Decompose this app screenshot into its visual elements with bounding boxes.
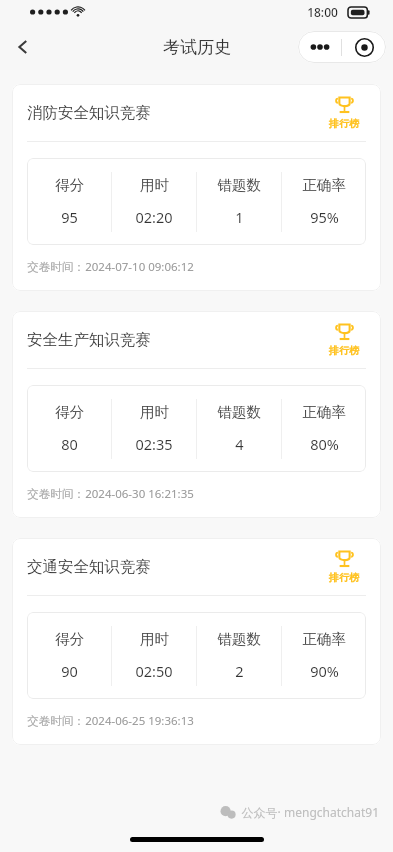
staticText: 2	[235, 661, 244, 681]
staticText: 95%	[310, 207, 339, 227]
staticText: 02:35	[135, 434, 173, 454]
staticText: 2024-07-10 09:06:12	[85, 259, 194, 275]
staticText: 02:50	[135, 661, 173, 681]
staticText: 4	[235, 434, 244, 454]
staticText: 排行榜	[329, 117, 359, 130]
staticText: 错题数	[217, 630, 261, 648]
staticText: 错题数	[217, 403, 261, 421]
staticText: 交卷时间：	[27, 260, 85, 274]
staticText: 考试历史	[163, 37, 231, 58]
staticText: 90	[61, 661, 78, 681]
staticText: 公众号·	[241, 804, 281, 820]
staticText: 2024-06-30 16:21:35	[85, 486, 194, 502]
staticText: 正确率	[302, 630, 346, 648]
staticText: 交卷时间：	[27, 487, 85, 501]
staticText: 得分	[55, 176, 84, 194]
button[interactable]: Close	[342, 31, 386, 63]
staticText: mengchatchat91	[284, 804, 379, 820]
staticText: 2024-06-25 19:36:13	[85, 713, 194, 729]
staticText: 02:20	[135, 207, 173, 227]
staticText: 得分	[55, 630, 84, 648]
staticText: 错题数	[217, 176, 261, 194]
staticText: 正确率	[302, 403, 346, 421]
staticText: 交卷时间：	[27, 714, 85, 728]
staticText: 得分	[55, 403, 84, 421]
button[interactable]: Back	[0, 24, 46, 70]
button[interactable]: 交通安全知识竞赛	[12, 538, 381, 745]
staticText: 18:00	[307, 4, 338, 20]
staticText: 1	[235, 207, 244, 227]
staticText: 用时	[140, 176, 169, 194]
staticText: 80%	[310, 434, 339, 454]
staticText: 交通安全知识竞赛	[27, 557, 151, 577]
staticText: 正确率	[302, 176, 346, 194]
staticText: 安全生产知识竞赛	[27, 330, 151, 350]
button[interactable]: 消防安全知识竞赛	[12, 84, 381, 291]
staticText: 消防安全知识竞赛	[27, 103, 151, 123]
staticText: 95	[61, 207, 78, 227]
staticText: 90%	[310, 661, 339, 681]
button[interactable]: 安全生产知识竞赛	[12, 311, 381, 518]
button[interactable]: 排行榜	[322, 95, 366, 130]
staticText: 80	[61, 434, 78, 454]
button[interactable]: 排行榜	[322, 549, 366, 584]
button[interactable]: 排行榜	[322, 322, 366, 357]
staticText: 排行榜	[329, 344, 359, 357]
staticText: 用时	[140, 403, 169, 421]
staticText: 用时	[140, 630, 169, 648]
button[interactable]: More	[298, 31, 341, 63]
staticText: 排行榜	[329, 571, 359, 584]
